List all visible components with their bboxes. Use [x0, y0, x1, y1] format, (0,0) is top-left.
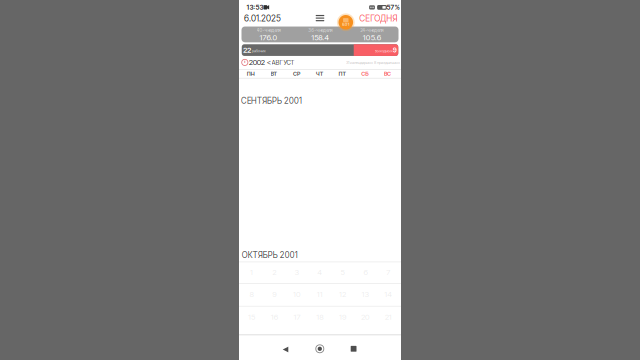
button[interactable]: 16	[263, 306, 286, 327]
button[interactable]: 17	[286, 306, 308, 327]
staticText: ПТ	[338, 70, 345, 77]
staticText: СР	[293, 70, 300, 77]
staticText: 9	[272, 289, 276, 299]
button[interactable]: 15	[240, 306, 263, 327]
staticText: 11	[317, 289, 323, 299]
staticText: 6.01	[342, 22, 350, 27]
staticText: 22	[243, 46, 251, 55]
staticText: 6	[363, 267, 367, 277]
button[interactable]: Домой	[311, 340, 329, 358]
staticText: 4	[317, 267, 322, 277]
staticText: СБ	[361, 70, 368, 77]
staticText: 5	[341, 267, 345, 277]
staticText: 7	[386, 267, 390, 277]
staticText: 16	[271, 312, 278, 321]
staticText: 14	[384, 289, 392, 299]
button[interactable]: 20	[354, 306, 377, 327]
staticText: 15	[248, 312, 255, 321]
button[interactable]: Назад	[276, 340, 294, 358]
staticText: СЕНТЯБРЬ 2001	[241, 96, 302, 106]
staticText: <	[267, 57, 272, 66]
staticText: 40-ч неделя	[257, 28, 281, 33]
button[interactable]: 21	[377, 306, 400, 327]
staticText: ОКТЯБРЬ 2001	[242, 250, 298, 260]
staticText: выходных	[375, 48, 393, 53]
button[interactable]: Текущая дата	[240, 57, 249, 67]
button[interactable]: Меню	[310, 11, 330, 25]
staticText: 6.01.2025	[244, 13, 281, 24]
staticText: 158.4	[311, 33, 329, 42]
staticText: 36-ч неделя	[308, 28, 332, 33]
staticText: 8	[249, 289, 253, 299]
staticText: 2	[272, 267, 276, 277]
staticText: СЕГОДНЯ	[359, 13, 397, 23]
button[interactable]: СЕГОДНЯ	[356, 12, 400, 25]
staticText: 18	[316, 312, 323, 321]
button[interactable]: Перейти к сегодняшней дате	[336, 13, 355, 32]
staticText: 24-ч неделя	[360, 28, 383, 33]
staticText: ВС	[384, 70, 391, 77]
staticText: 20	[361, 312, 370, 321]
staticText: ЧТ	[316, 70, 323, 77]
staticText: 12	[339, 289, 346, 299]
staticText: 57%	[386, 3, 399, 11]
staticText: 31 календарных 8 праздничных	[346, 60, 400, 65]
staticText: 3	[294, 267, 299, 277]
staticText: 19	[339, 312, 346, 321]
button[interactable]: Предыдущий месяц	[265, 56, 273, 67]
staticText: 176.0	[260, 33, 278, 42]
staticText: 9	[393, 46, 397, 54]
staticText: 13:53	[246, 3, 263, 11]
staticText: ВТ	[271, 70, 277, 77]
button[interactable]: 19	[331, 306, 354, 327]
staticText: рабочих	[252, 48, 266, 53]
button[interactable]: Последние приложения	[345, 340, 363, 358]
staticText: 21	[385, 312, 392, 321]
staticText: 2002	[249, 57, 265, 67]
staticText: 17	[293, 312, 300, 321]
button[interactable]: 18	[308, 306, 331, 327]
staticText: ПН	[247, 70, 255, 77]
staticText: 105.6	[363, 33, 381, 42]
staticText: 13	[361, 289, 369, 299]
staticText: АВГУСТ	[271, 58, 294, 66]
staticText: 1	[250, 267, 253, 277]
staticText: 10	[293, 289, 301, 299]
